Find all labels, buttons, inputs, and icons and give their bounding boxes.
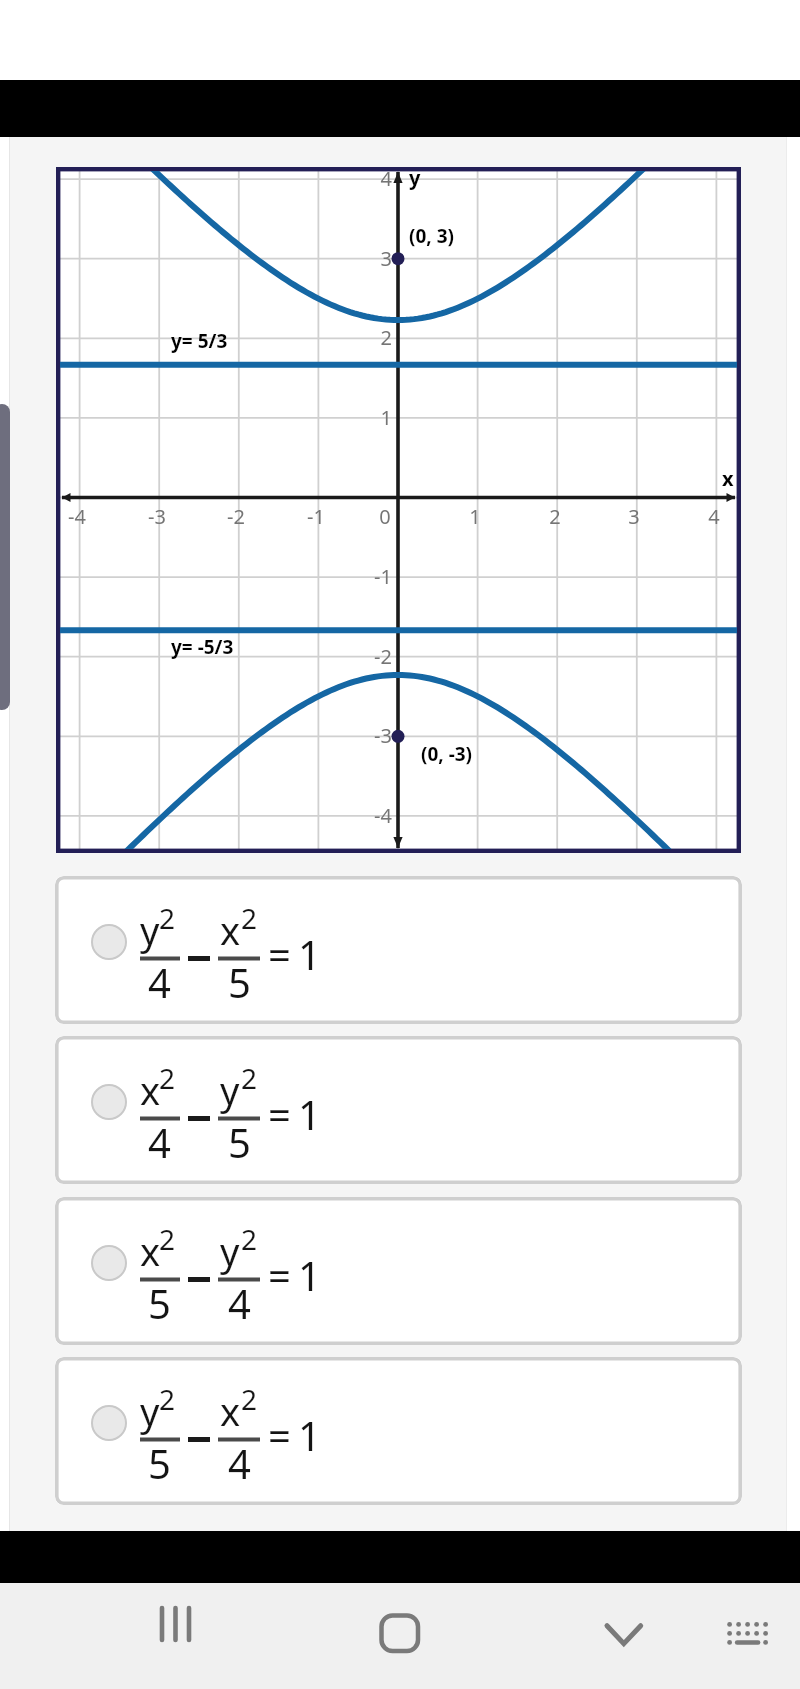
staticText: 4 — [148, 955, 171, 1009]
button[interactable]: Recents — [130, 1584, 220, 1664]
button[interactable]: x — [55, 1197, 742, 1345]
staticText: 2 — [159, 1220, 176, 1258]
staticText: 5 — [148, 1436, 171, 1490]
staticText: y — [140, 1385, 160, 1437]
button[interactable]: Keyboard — [700, 1584, 790, 1664]
staticText: -4 — [57, 503, 97, 530]
staticText: 4 — [228, 1436, 251, 1490]
staticText: -3 — [352, 722, 392, 749]
button[interactable]: y — [55, 1357, 742, 1505]
staticText: (0, -3) — [421, 741, 473, 767]
staticText: 5 — [228, 955, 251, 1009]
staticText: y= 5/3 — [171, 328, 228, 354]
staticText: -3 — [137, 503, 177, 530]
staticText: 3 — [352, 245, 392, 272]
staticText: 3 — [614, 503, 654, 530]
staticText: = — [268, 1087, 291, 1141]
staticText: 2 — [352, 324, 392, 351]
button[interactable]: y — [55, 876, 742, 1024]
staticText: 1 — [298, 1087, 321, 1141]
staticText: 2 — [241, 899, 258, 937]
staticText: 2 — [241, 1380, 258, 1418]
staticText: -2 — [216, 503, 256, 530]
staticText: 2 — [159, 1380, 176, 1418]
staticText: 1 — [298, 927, 321, 981]
staticText: 2 — [241, 1220, 258, 1258]
staticText: -1 — [352, 563, 392, 590]
staticText: -1 — [296, 503, 336, 530]
staticText: x — [140, 1225, 161, 1277]
staticText: y= -5/3 — [171, 634, 234, 660]
staticText: x — [220, 904, 241, 956]
staticText: x — [722, 465, 734, 492]
staticText: 2 — [159, 1059, 176, 1097]
staticText: x — [140, 1064, 161, 1116]
staticText: 5 — [148, 1276, 171, 1330]
staticText: 4 — [148, 1115, 171, 1169]
staticText: 4 — [228, 1276, 251, 1330]
staticText: y — [140, 904, 160, 956]
staticText: 0 — [365, 503, 405, 530]
button[interactable]: x — [55, 1036, 742, 1184]
staticText: = — [268, 1248, 291, 1302]
staticText: -2 — [352, 643, 392, 670]
staticText: -4 — [352, 802, 392, 829]
staticText: 4 — [352, 165, 392, 192]
staticText: x — [220, 1385, 241, 1437]
staticText: 4 — [694, 503, 734, 530]
staticText: 5 — [228, 1115, 251, 1169]
staticText: 1 — [298, 1248, 321, 1302]
staticText: 1 — [352, 404, 392, 431]
staticText: y — [220, 1064, 240, 1116]
staticText: 2 — [159, 899, 176, 937]
staticText: 1 — [298, 1408, 321, 1462]
staticText: = — [268, 927, 291, 981]
staticText: (0, 3) — [409, 223, 454, 249]
button[interactable]: Back — [584, 1584, 664, 1664]
staticText: 1 — [455, 503, 495, 530]
staticText: 2 — [535, 503, 575, 530]
staticText: y — [220, 1225, 240, 1277]
button[interactable]: Home — [360, 1584, 440, 1664]
staticText: y — [409, 164, 421, 191]
staticText: 2 — [241, 1059, 258, 1097]
staticText: = — [268, 1408, 291, 1462]
